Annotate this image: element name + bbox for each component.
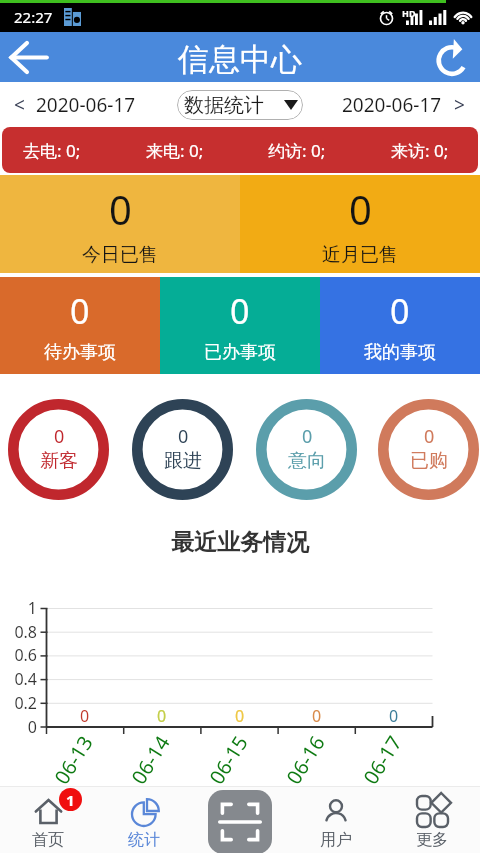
button[interactable]: 去电: 0; bbox=[2, 127, 478, 173]
staticText: 06-17 bbox=[357, 730, 408, 789]
staticText: 06-16 bbox=[280, 730, 331, 789]
staticText: 约访: 0; bbox=[268, 139, 326, 162]
staticText: 0 bbox=[109, 182, 132, 236]
staticText: 0 bbox=[389, 705, 399, 727]
staticText: 最近业务情况 bbox=[171, 528, 309, 557]
button[interactable]: 统计 bbox=[96, 787, 192, 853]
button[interactable]: 0 bbox=[240, 175, 480, 273]
staticText: 今日已售 bbox=[82, 243, 158, 267]
staticText: 去电: 0; bbox=[23, 139, 81, 162]
staticText: 0 bbox=[178, 424, 189, 449]
staticText: 0 bbox=[54, 424, 65, 449]
button[interactable]: 数据统计 bbox=[177, 90, 303, 120]
staticText: 2020-06-17 bbox=[36, 92, 136, 118]
staticText: 0 bbox=[230, 288, 250, 334]
staticText: 0 bbox=[27, 716, 37, 738]
staticText: 0 bbox=[157, 705, 167, 727]
staticText: 首页 bbox=[32, 830, 64, 850]
staticText: 0 bbox=[312, 705, 322, 727]
button[interactable]: 0 bbox=[8, 399, 109, 500]
staticText: 1 bbox=[27, 597, 37, 619]
staticText: 统计 bbox=[128, 830, 160, 850]
staticText: 已购 bbox=[410, 449, 448, 473]
staticText: 待办事项 bbox=[44, 341, 116, 364]
button[interactable]: 0 bbox=[256, 399, 357, 500]
staticText: 0.8 bbox=[14, 621, 37, 643]
button[interactable]: 用户 bbox=[288, 787, 384, 853]
staticText: 06-14 bbox=[125, 730, 176, 789]
button[interactable]: Scan bbox=[192, 787, 288, 853]
button[interactable]: Refresh bbox=[424, 32, 480, 82]
staticText: 0 bbox=[302, 424, 313, 449]
staticText: HD bbox=[402, 7, 416, 19]
staticText: 0 bbox=[80, 705, 90, 727]
button[interactable]: 1 bbox=[0, 787, 96, 853]
staticText: 近月已售 bbox=[322, 243, 398, 267]
staticText: 已办事项 bbox=[204, 341, 276, 364]
staticText: > bbox=[454, 92, 465, 118]
staticText: 06-13 bbox=[48, 730, 99, 789]
staticText: 0.2 bbox=[14, 692, 37, 714]
button[interactable]: 0 bbox=[0, 175, 240, 273]
button[interactable]: 0 bbox=[320, 277, 480, 374]
button[interactable]: 0 bbox=[0, 277, 160, 374]
staticText: 0.6 bbox=[14, 644, 37, 666]
staticText: 新客 bbox=[40, 449, 78, 473]
button[interactable]: 0 bbox=[132, 399, 233, 500]
staticText: < bbox=[14, 92, 25, 118]
staticText: 来电: 0; bbox=[146, 139, 204, 162]
button[interactable]: 2020-06-17 bbox=[342, 92, 465, 118]
staticText: 0 bbox=[235, 705, 245, 727]
staticText: 跟进 bbox=[164, 449, 202, 473]
button[interactable]: 更多 bbox=[384, 787, 480, 853]
button[interactable]: 0 bbox=[378, 399, 479, 500]
button[interactable]: Back bbox=[0, 32, 56, 82]
staticText: 信息中心 bbox=[178, 40, 302, 79]
staticText: 来访: 0; bbox=[391, 139, 449, 162]
staticText: 22:27 bbox=[14, 7, 53, 27]
staticText: 0 bbox=[70, 288, 90, 334]
button[interactable]: < bbox=[14, 92, 136, 118]
staticText: 1 bbox=[66, 790, 75, 810]
staticText: 用户 bbox=[320, 830, 352, 850]
staticText: 06-15 bbox=[203, 730, 254, 789]
staticText: 0 bbox=[424, 424, 435, 449]
staticText: 意向 bbox=[288, 449, 326, 473]
staticText: 0 bbox=[349, 182, 372, 236]
staticText: 我的事项 bbox=[364, 341, 436, 364]
staticText: 数据统计 bbox=[184, 93, 264, 118]
staticText: 2020-06-17 bbox=[342, 92, 442, 118]
staticText: 更多 bbox=[416, 830, 448, 850]
staticText: 0.4 bbox=[14, 668, 37, 690]
button[interactable]: 0 bbox=[160, 277, 320, 374]
staticText: 0 bbox=[390, 288, 410, 334]
